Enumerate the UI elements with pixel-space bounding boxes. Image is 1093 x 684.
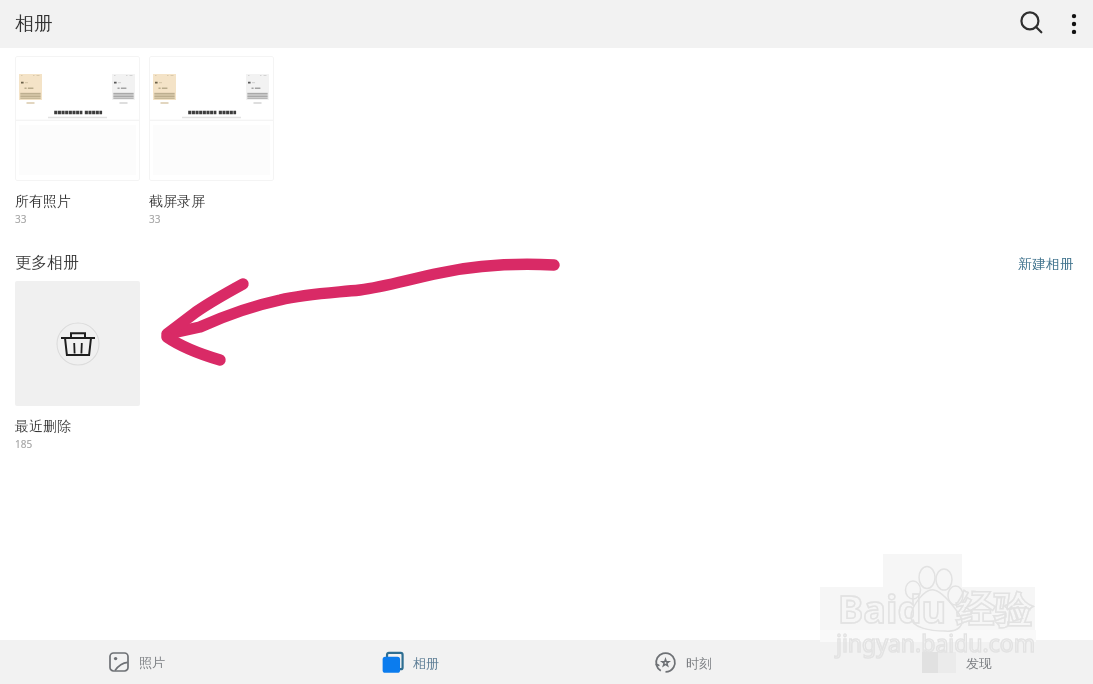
button[interactable]: 新建相册 bbox=[1002, 252, 1093, 274]
button[interactable]: More options bbox=[1055, 5, 1093, 43]
staticText: 33 bbox=[149, 212, 161, 226]
staticText: 最近删除 bbox=[15, 418, 71, 436]
button[interactable]: 发现 bbox=[820, 640, 1093, 684]
staticText: 照片 bbox=[139, 654, 165, 670]
staticText: 所有照片 bbox=[15, 193, 71, 211]
staticText: jingyan.baidu.com bbox=[836, 627, 1036, 658]
staticText: 时刻 bbox=[686, 655, 712, 671]
staticText: 185 bbox=[15, 437, 33, 451]
staticText: 发现 bbox=[966, 655, 992, 671]
staticText: 截屏录屏 bbox=[149, 193, 205, 211]
button[interactable]: 相册 bbox=[274, 640, 547, 684]
button[interactable]: Search bbox=[1009, 1, 1055, 47]
staticText: 更多相册 bbox=[15, 253, 79, 273]
button[interactable]: 最近删除 bbox=[15, 281, 140, 451]
button[interactable]: 照片 bbox=[0, 640, 274, 684]
staticText: 新建相册 bbox=[1018, 256, 1074, 270]
staticText: 相册 bbox=[413, 655, 439, 671]
staticText: Baidu 经验 bbox=[838, 582, 1032, 634]
button[interactable]: 所有照片 bbox=[15, 56, 140, 226]
staticText: 33 bbox=[15, 212, 27, 226]
button[interactable]: 时刻 bbox=[547, 640, 820, 684]
button[interactable]: 截屏录屏 bbox=[149, 56, 274, 226]
staticText: 相册 bbox=[15, 12, 53, 36]
